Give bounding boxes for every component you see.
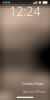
staticText: Golden Hour bbox=[22, 81, 44, 86]
staticText: Shot on iPhone bbox=[23, 90, 46, 94]
staticText: 12:24 bbox=[9, 3, 40, 19]
